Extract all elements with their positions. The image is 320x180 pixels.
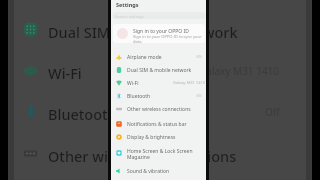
staticText: Wi-Fi <box>127 80 139 87</box>
button[interactable]: Other wireless connections <box>14 140 306 168</box>
staticText: Search settings <box>115 14 144 19</box>
staticText: Display & brightness <box>127 134 176 141</box>
staticText: Sign in to your OPPO ID to sync your dat… <box>133 34 202 43</box>
staticText: Dual SIM & mobile network <box>127 67 192 74</box>
staticText: Notifications & status bar <box>127 121 187 128</box>
staticText: Off <box>265 105 280 119</box>
button[interactable]: Other wireless connections <box>111 102 206 115</box>
staticText: Bluetooth <box>48 104 117 124</box>
staticText: Galaxy M31 1410 <box>199 64 280 78</box>
button[interactable]: Search settings <box>112 12 206 19</box>
button[interactable]: Airplane mode <box>111 50 206 63</box>
staticText: Airplane mode <box>127 54 162 61</box>
button[interactable]: Wi-Fi <box>111 76 206 89</box>
staticText: Home Screen & Lock Screen Magazine <box>127 148 193 161</box>
button[interactable]: Dual SIM & mobile network <box>14 16 306 44</box>
staticText: Galaxy M31 1410 <box>173 80 206 85</box>
button[interactable]: Dual SIM & mobile network <box>111 63 206 76</box>
staticText: Sign in to your OPPO ID <box>133 28 189 35</box>
staticText: Wi-Fi <box>48 63 82 83</box>
button[interactable]: Display & brightness <box>111 130 206 143</box>
button[interactable]: Sound & vibration <box>111 164 206 177</box>
button[interactable]: Notifications & status bar <box>111 117 206 130</box>
staticText: Settings <box>116 1 139 8</box>
staticText: Bluetooth <box>127 93 151 100</box>
button[interactable]: Bluetooth <box>14 98 306 126</box>
button[interactable]: Bluetooth <box>111 89 206 102</box>
staticText: Dual SIM & mobile network <box>48 22 238 42</box>
staticText: Other wireless connections <box>127 106 191 113</box>
button[interactable]: Wi-Fi <box>14 57 306 85</box>
button[interactable]: Home Screen & Lock Screen Magazine <box>111 146 206 159</box>
button[interactable]: Sign in to your OPPO ID <box>113 24 205 43</box>
staticText: Other wireless connections <box>48 146 237 166</box>
staticText: Sound & vibration <box>127 168 170 175</box>
